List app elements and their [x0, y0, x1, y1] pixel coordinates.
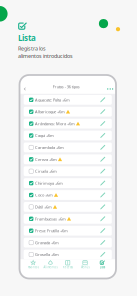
button[interactable]: Albaricoque +6m [24, 107, 112, 117]
staticText: Ciruela +6m [35, 169, 57, 174]
staticText: Lista [100, 265, 105, 269]
staticText: Caqui +6m [35, 133, 54, 138]
staticText: Favoritos [28, 266, 39, 269]
staticText: Chirimoya +6m [35, 180, 63, 186]
staticText: Carambola +6m [35, 145, 64, 150]
button[interactable]: Ciruela +6m [24, 166, 112, 176]
button[interactable]: Recetas [59, 260, 76, 269]
button[interactable]: Grosella +6m [24, 250, 112, 259]
staticText: Menús [81, 265, 90, 269]
button[interactable]: Coco +6m [24, 190, 112, 200]
button[interactable]: Back [21, 83, 28, 91]
button[interactable]: Lista [94, 260, 111, 269]
staticText: Frambuesas +6m [35, 216, 66, 221]
staticText: Granada +6m [35, 240, 59, 245]
staticText: alimentos introducidos [18, 52, 73, 59]
button[interactable]: Favoritos [24, 260, 42, 269]
staticText: Dátil +6m [35, 204, 52, 210]
staticText: Fresa: Frutilla +6m [35, 228, 68, 233]
button[interactable]: Frambuesas +6m [24, 214, 112, 224]
button[interactable]: Fresa: Frutilla +6m [24, 226, 112, 236]
staticText: Coco +6m [35, 192, 53, 198]
staticText: Registra los [18, 45, 46, 52]
staticText: Frutas - 36 tipos [53, 84, 80, 89]
staticText: Arándanos: Mora +6m [35, 121, 75, 126]
button[interactable]: Granada +6m [24, 238, 112, 247]
button[interactable]: Menús [76, 260, 94, 269]
staticText: Albaricoque +6m [35, 109, 65, 114]
button[interactable]: Dátil +6m [24, 202, 112, 212]
button[interactable]: Cereza +6m [24, 154, 112, 164]
button[interactable]: Carambola +6m [24, 142, 112, 152]
staticText: Recetas [63, 265, 73, 269]
staticText: Lista [18, 33, 36, 43]
button[interactable]: Alimentos [42, 260, 59, 269]
button[interactable]: Arándanos: Mora +6m [24, 119, 112, 128]
staticText: Aguacate: Palta +6m [35, 97, 70, 102]
button[interactable]: Chirimoya +6m [24, 178, 112, 188]
staticText: Grosella +6m [35, 252, 59, 257]
staticText: Alimentos [43, 266, 57, 269]
button[interactable]: More options [106, 83, 114, 91]
button[interactable]: Aguacate: Palta +6m [24, 95, 112, 105]
staticText: Cereza +6m [35, 157, 57, 162]
button[interactable]: Caqui +6m [24, 131, 112, 140]
